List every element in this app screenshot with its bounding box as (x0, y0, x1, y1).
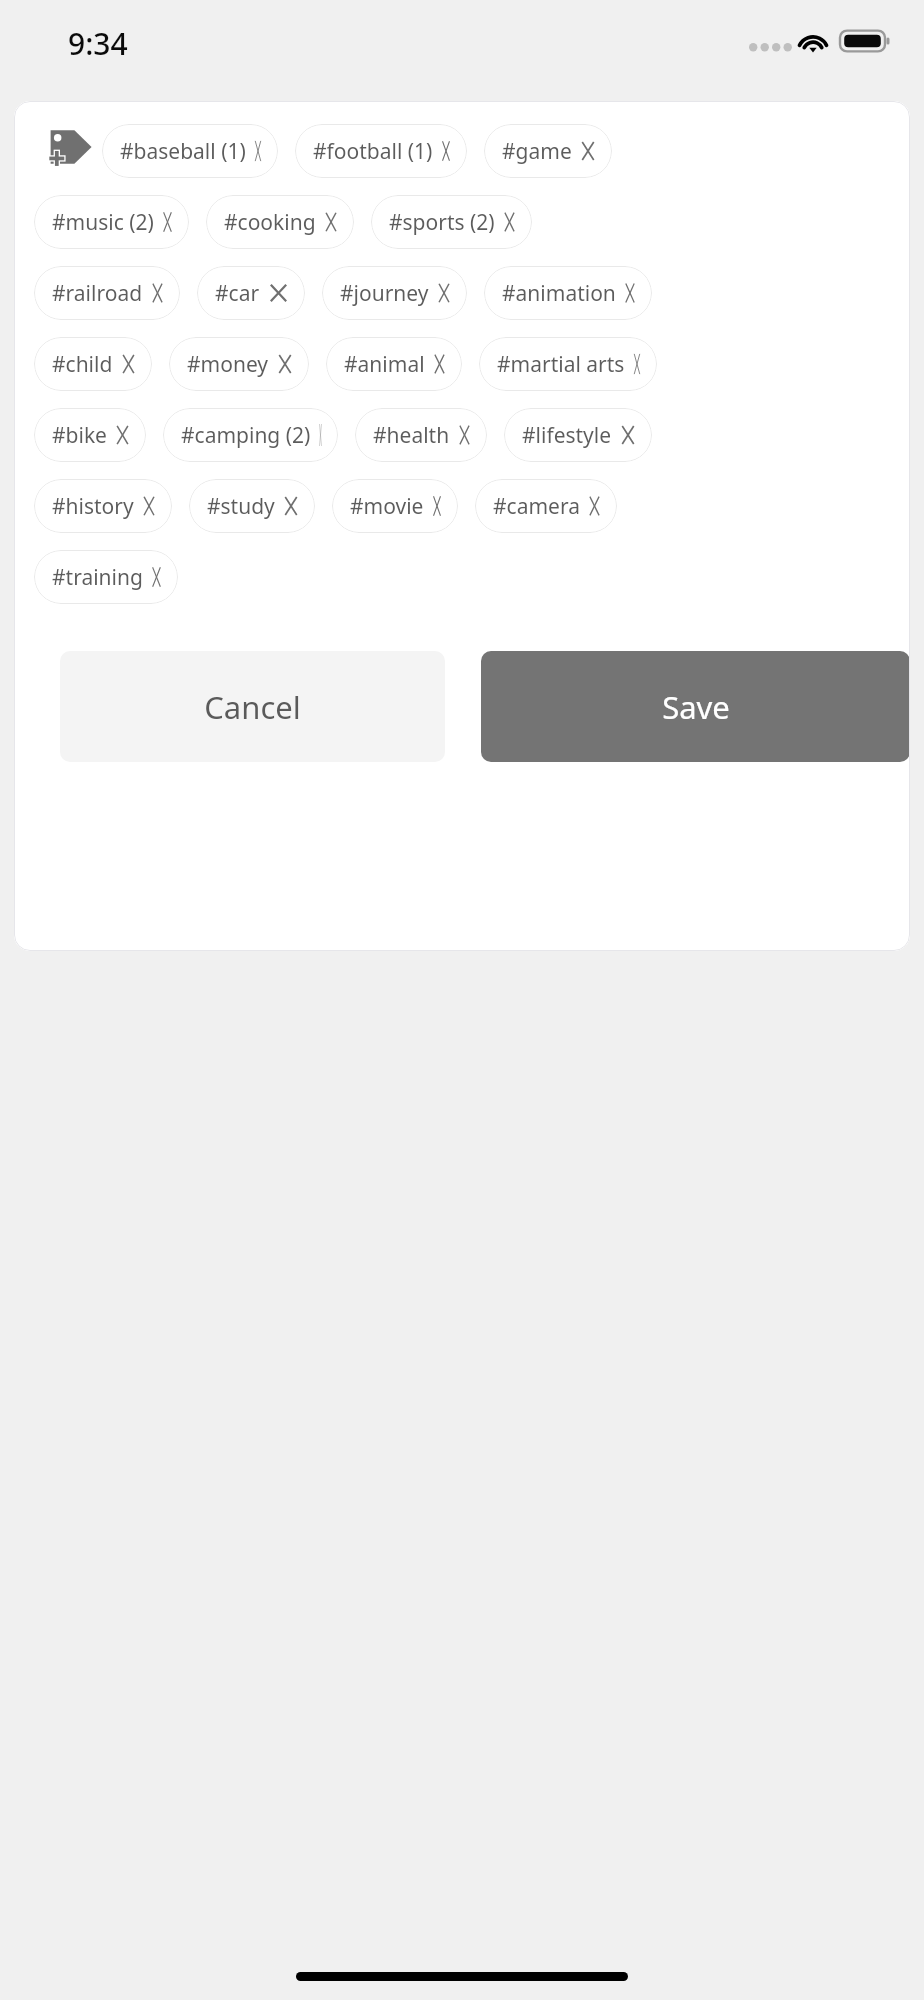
other: Remove #health (458, 424, 471, 446)
staticText: #car (215, 279, 260, 308)
button[interactable]: #camping (2) (163, 408, 338, 462)
other: Remove #martial arts (633, 353, 641, 375)
staticText: #football (1) (313, 137, 433, 166)
staticText: #journey (340, 279, 429, 308)
staticText: #health (373, 421, 450, 450)
other: Remove #sports (2) (503, 211, 516, 233)
other: Remove #bike (115, 424, 130, 446)
other: Remove #child (121, 353, 136, 375)
staticText: #bike (52, 421, 107, 450)
staticText: #history (52, 492, 134, 521)
other: Remove #music (2) (162, 211, 173, 233)
other: Remove #training (151, 566, 162, 588)
other: Remove #cooking (324, 211, 338, 233)
staticText: #camping (2) (181, 421, 311, 450)
button[interactable]: #study (189, 479, 315, 533)
button[interactable]: #bike (34, 408, 146, 462)
button[interactable]: #camera (475, 479, 617, 533)
button[interactable]: #journey (322, 266, 467, 320)
button[interactable]: #football (1) (295, 124, 467, 178)
staticText: #baseball (1) (120, 137, 246, 166)
staticText: #cooking (224, 208, 316, 237)
staticText: #study (207, 492, 275, 521)
button[interactable]: #training (34, 550, 178, 604)
other: Remove #football (1) (441, 140, 451, 162)
button[interactable]: #animation (484, 266, 652, 320)
other: Remove #camping (2) (319, 424, 322, 446)
button[interactable]: #railroad (34, 266, 180, 320)
button[interactable]: #sports (2) (371, 195, 532, 249)
staticText: #railroad (52, 279, 143, 308)
button[interactable]: #health (355, 408, 487, 462)
button[interactable]: Add tag (42, 119, 98, 175)
staticText: #animation (502, 279, 616, 308)
button[interactable]: #movie (332, 479, 458, 533)
other: Remove #money (277, 353, 293, 375)
staticText: #martial arts (497, 350, 625, 379)
button[interactable]: #lifestyle (504, 408, 652, 462)
other: Remove #game (580, 140, 596, 162)
button[interactable]: #money (169, 337, 309, 391)
other: Remove #journey (437, 282, 451, 304)
staticText: #animal (344, 350, 425, 379)
staticText: Save (662, 686, 730, 728)
button[interactable]: Save (481, 651, 910, 762)
other: Remove #movie (432, 495, 442, 517)
staticText: #game (502, 137, 572, 166)
staticText: #sports (2) (389, 208, 495, 237)
button[interactable]: #car (197, 266, 305, 320)
staticText: #child (52, 350, 113, 379)
staticText: Cancel (204, 686, 301, 728)
other: Remove #car (268, 282, 289, 304)
staticText: 9:34 (68, 23, 128, 64)
staticText: #money (187, 350, 269, 379)
button[interactable]: #martial arts (479, 337, 657, 391)
button[interactable]: #game (484, 124, 612, 178)
button[interactable]: #child (34, 337, 152, 391)
staticText: #camera (493, 492, 580, 521)
other: Remove #history (142, 495, 156, 517)
other: Remove #baseball (1) (254, 140, 262, 162)
other: Remove #animal (433, 353, 446, 375)
staticText: #training (52, 563, 143, 592)
button[interactable]: #baseball (1) (102, 124, 278, 178)
button[interactable]: #animal (326, 337, 462, 391)
staticText: #music (2) (52, 208, 154, 237)
other: Remove #camera (588, 495, 601, 517)
staticText: #lifestyle (522, 421, 612, 450)
button[interactable]: #music (2) (34, 195, 189, 249)
other: Remove #study (283, 495, 299, 517)
staticText: #movie (350, 492, 424, 521)
button[interactable]: Cancel (60, 651, 445, 762)
button[interactable]: #history (34, 479, 172, 533)
other: Remove #lifestyle (620, 424, 636, 446)
other: Remove #animation (624, 282, 636, 304)
button[interactable]: #cooking (206, 195, 354, 249)
other: Remove #railroad (151, 282, 164, 304)
